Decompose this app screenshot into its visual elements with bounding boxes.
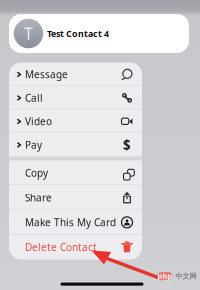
staticText: Share	[25, 191, 52, 204]
button[interactable]: Call	[9, 86, 142, 109]
staticText: Message	[25, 67, 68, 81]
staticText: Delete Contact	[25, 240, 97, 254]
staticText: 中文网	[175, 271, 196, 281]
staticText: T	[24, 22, 33, 44]
button[interactable]: Delete Contact	[9, 235, 142, 260]
staticText: Call	[25, 91, 43, 104]
button[interactable]: Pay	[9, 133, 142, 156]
staticText: php	[157, 271, 172, 281]
button[interactable]: Message	[9, 62, 142, 86]
button[interactable]: Copy	[9, 160, 142, 185]
button[interactable]: Make This My Card	[9, 210, 142, 235]
staticText: $	[123, 136, 131, 154]
staticText: Test Contact 4	[47, 27, 109, 39]
button[interactable]: Share	[9, 185, 142, 210]
staticText: Make This My Card	[25, 216, 116, 229]
staticText: Copy	[25, 166, 48, 180]
button[interactable]: Video	[9, 109, 142, 133]
staticText: Pay	[25, 138, 42, 151]
staticText: Video	[25, 114, 52, 128]
button[interactable]: T	[9, 14, 189, 53]
